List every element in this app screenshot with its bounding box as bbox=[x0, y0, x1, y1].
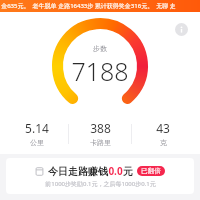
staticText: 7188 bbox=[71, 54, 129, 88]
button[interactable]: 43 bbox=[132, 120, 194, 147]
staticText: 金635元。 老牛脱单 走路16433步 累计获得奖金316元。 无聊 走 bbox=[1, 2, 176, 10]
staticText: 卡路里 bbox=[90, 138, 111, 147]
staticText: 公里 bbox=[30, 138, 44, 147]
staticText: 已翻倍 bbox=[141, 167, 161, 175]
button[interactable]: 5.14 bbox=[6, 120, 68, 147]
staticText: 前1000步奖励0.1元，之后每1000步0.1元 bbox=[45, 180, 156, 188]
staticText: 元 bbox=[123, 165, 133, 178]
button[interactable]: 金635元。 老牛脱单 走路16433步 累计获得奖金316元。 无聊 走 bbox=[0, 0, 200, 12]
staticText: 5.14 bbox=[25, 120, 49, 136]
staticText: 今日走路赚钱 bbox=[48, 165, 108, 178]
staticText: 步数 bbox=[93, 44, 107, 53]
button[interactable]: Info bbox=[172, 20, 190, 38]
staticText: 0.0 bbox=[108, 164, 123, 178]
staticText: 43 bbox=[156, 120, 170, 136]
button[interactable]: 今日走路赚钱 bbox=[6, 158, 194, 194]
staticText: 克 bbox=[160, 138, 167, 147]
staticText: 388 bbox=[90, 120, 111, 136]
button[interactable]: 388 bbox=[69, 120, 131, 147]
